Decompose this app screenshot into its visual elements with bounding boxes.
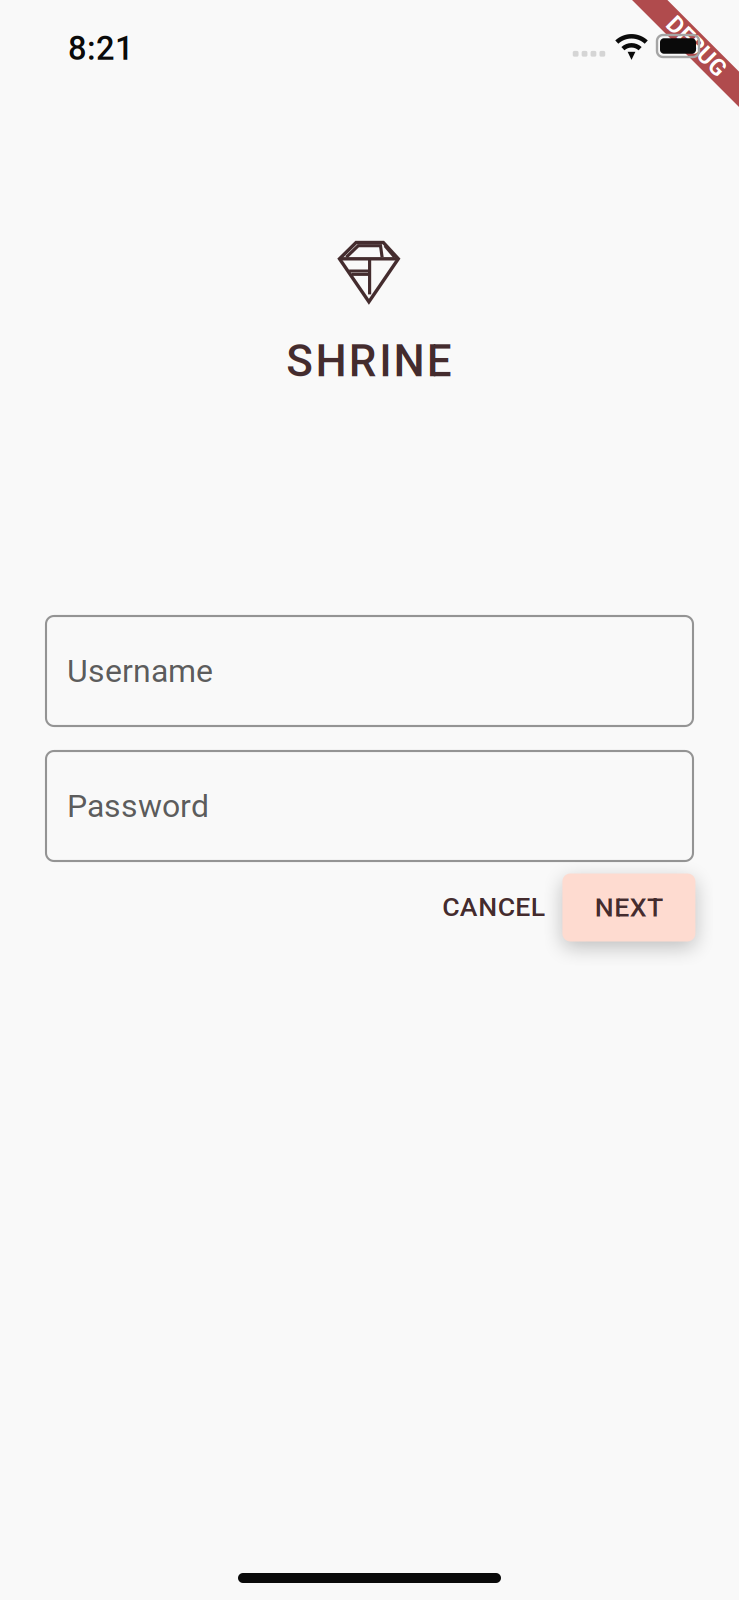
staticText: DEBUG bbox=[659, 33, 733, 60]
staticText: 8:21 bbox=[68, 29, 134, 68]
staticText: SHRINE bbox=[286, 335, 452, 387]
staticText: NEXT bbox=[595, 892, 663, 923]
button[interactable]: NEXT bbox=[562, 873, 695, 941]
button[interactable]: CANCEL bbox=[419, 873, 567, 941]
button[interactable]: Password bbox=[46, 751, 693, 861]
staticText: Password bbox=[67, 787, 209, 825]
staticText: CANCEL bbox=[442, 891, 545, 922]
staticText: Username bbox=[67, 652, 213, 690]
button[interactable]: Username bbox=[46, 616, 693, 726]
